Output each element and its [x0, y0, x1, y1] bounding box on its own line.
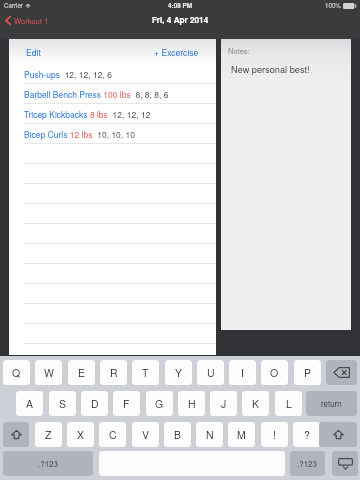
staticText: F — [123, 396, 130, 411]
staticText: M — [237, 427, 246, 442]
button[interactable]: ? — [293, 422, 320, 447]
button[interactable]: W — [35, 360, 62, 385]
button[interactable]: Hide keyboard — [332, 451, 358, 476]
button[interactable] — [9, 304, 216, 324]
button[interactable]: V — [132, 422, 159, 447]
button[interactable]: A — [16, 391, 43, 416]
button[interactable]: Shift — [3, 422, 29, 447]
button[interactable] — [9, 344, 216, 364]
button[interactable]: O — [261, 360, 288, 385]
button[interactable] — [9, 244, 216, 264]
button[interactable]: C — [99, 422, 126, 447]
staticText: S — [59, 396, 67, 411]
button[interactable]: R — [100, 360, 127, 385]
staticText: .?123 — [38, 458, 59, 469]
button[interactable]: S — [49, 391, 76, 416]
button[interactable]: B — [164, 422, 191, 447]
staticText: Y — [175, 365, 183, 380]
button[interactable]: M — [228, 422, 255, 447]
staticText: V — [142, 427, 150, 442]
button[interactable]: Z — [35, 422, 62, 447]
button[interactable]: N — [196, 422, 223, 447]
staticText: X — [77, 427, 85, 442]
button[interactable]: Bicep Curls 12 lbs 10, 10, 10 — [9, 124, 216, 144]
staticText: 100% — [325, 1, 341, 10]
staticText: Carrier — [4, 1, 23, 10]
button[interactable]: X — [67, 422, 94, 447]
button[interactable]: Shift — [319, 422, 357, 447]
staticText: I — [241, 365, 244, 380]
button[interactable]: T — [132, 360, 159, 385]
button[interactable]: Y — [165, 360, 192, 385]
button[interactable] — [9, 224, 216, 244]
button[interactable]: Edit — [21, 42, 46, 62]
button[interactable]: Notes: — [221, 39, 351, 330]
button[interactable]: ! — [261, 422, 288, 447]
button[interactable]: U — [197, 360, 224, 385]
staticText: Notes: — [228, 45, 250, 56]
button[interactable] — [9, 264, 216, 284]
staticText: D — [91, 396, 99, 411]
staticText: W — [44, 365, 54, 380]
staticText: R — [110, 365, 118, 380]
button[interactable]: Q — [3, 360, 30, 385]
staticText: K — [252, 396, 260, 411]
staticText: .?123 — [297, 458, 318, 469]
button[interactable]: + Excercise — [149, 42, 204, 62]
staticText: Workout 1 — [14, 15, 49, 26]
button[interactable]: Workout 1 — [3, 13, 51, 27]
staticText: O — [270, 365, 279, 380]
staticText: G — [155, 396, 164, 411]
button[interactable]: D — [81, 391, 108, 416]
button[interactable]: Tricep Kickbacks 8 lbs 12, 12, 12 — [9, 104, 216, 124]
button[interactable] — [9, 144, 216, 164]
button[interactable] — [9, 324, 216, 344]
staticText: Tricep Kickbacks 8 lbs 12, 12, 12 — [24, 108, 151, 120]
staticText: Edit — [26, 46, 41, 58]
staticText: E — [78, 365, 86, 380]
staticText: T — [142, 365, 149, 380]
staticText: Z — [45, 427, 52, 442]
button[interactable]: .?123 — [290, 451, 325, 476]
button[interactable]: .?123 — [3, 451, 93, 476]
staticText: 4:08 PM — [168, 1, 193, 10]
button[interactable] — [9, 204, 216, 224]
button[interactable]: K — [242, 391, 269, 416]
staticText: Bicep Curls 12 lbs 10, 10, 10 — [24, 128, 136, 140]
staticText: J — [221, 396, 227, 411]
button[interactable]: J — [210, 391, 237, 416]
staticText: N — [206, 427, 214, 442]
staticText: A — [26, 396, 34, 411]
button[interactable]: F — [113, 391, 140, 416]
staticText: L — [286, 396, 292, 411]
staticText: return — [321, 398, 342, 409]
staticText: C — [109, 427, 117, 442]
staticText: H — [188, 396, 196, 411]
staticText: + Excercise — [154, 46, 199, 58]
button[interactable]: Barbell Bench Press 100 lbs 8, 8, 8, 6 — [9, 84, 216, 104]
staticText: B — [174, 427, 182, 442]
button[interactable] — [9, 164, 216, 184]
staticText: U — [207, 365, 215, 380]
staticText: P — [304, 365, 312, 380]
button[interactable] — [9, 184, 216, 204]
staticText: Fri, 4 Apr 2014 — [152, 14, 209, 26]
button[interactable]: return — [306, 391, 357, 416]
staticText: New personal best! — [231, 62, 310, 75]
button[interactable]: P — [294, 360, 321, 385]
button[interactable]: L — [275, 391, 302, 416]
staticText: Q — [12, 365, 21, 380]
button[interactable]: H — [178, 391, 205, 416]
staticText: Push-ups 12, 12, 12, 6 — [24, 68, 112, 80]
button[interactable]: I — [229, 360, 256, 385]
staticText: ? — [304, 427, 310, 442]
button[interactable]: Push-ups 12, 12, 12, 6 — [9, 64, 216, 84]
button[interactable] — [9, 284, 216, 304]
staticText: ! — [273, 427, 276, 442]
button[interactable]: Backspace — [326, 360, 357, 385]
button[interactable]: E — [68, 360, 95, 385]
button[interactable]: G — [146, 391, 173, 416]
staticText: Barbell Bench Press 100 lbs 8, 8, 8, 6 — [24, 88, 169, 100]
